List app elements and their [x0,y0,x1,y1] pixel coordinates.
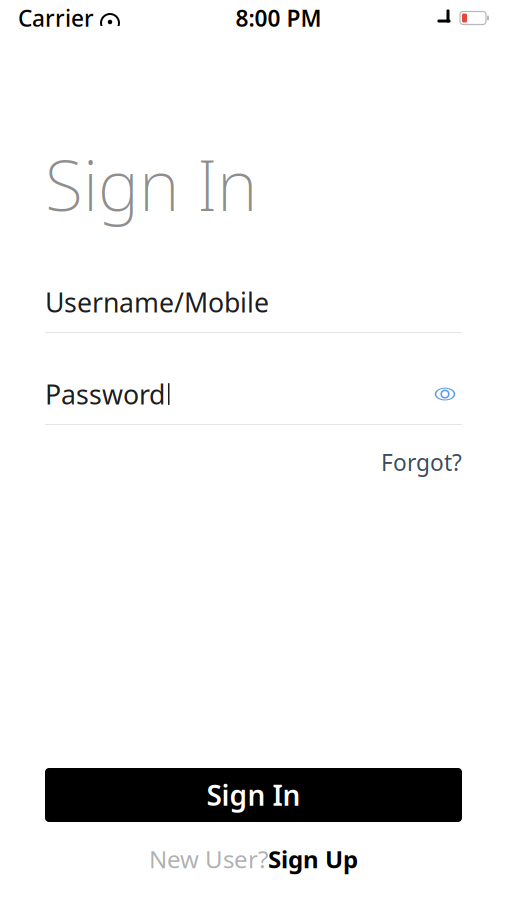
staticText: Carrier [18,3,94,33]
staticText: Password [45,376,165,412]
button[interactable]: New User? [0,844,507,874]
staticText: Sign In [45,138,257,230]
staticText: Forgot? [381,447,462,477]
button[interactable]: Forgot? [371,442,462,482]
button[interactable]: Sign In [45,768,462,822]
staticText: Username/Mobile [45,284,269,320]
staticText: New User? [149,843,268,875]
staticText: Sign In [206,776,300,814]
staticText: 8:00 PM [235,3,321,33]
staticText: Sign Up [268,843,358,875]
button[interactable]: Show password [428,380,462,408]
